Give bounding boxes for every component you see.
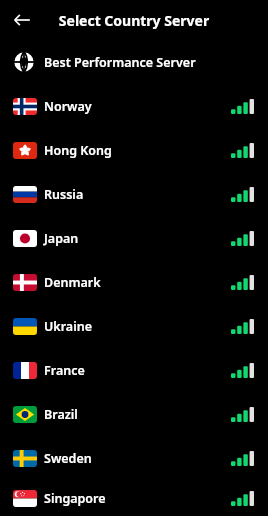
button[interactable]: Brazil <box>0 392 268 436</box>
button[interactable]: Sweden <box>0 436 268 480</box>
button[interactable]: Russia <box>0 172 268 216</box>
staticText: Hong Kong <box>44 142 112 159</box>
staticText: Select Country Server <box>0 11 268 30</box>
staticText: France <box>44 362 85 379</box>
staticText: Denmark <box>44 274 101 291</box>
staticText: Russia <box>44 186 84 203</box>
staticText: Japan <box>44 230 79 247</box>
button[interactable]: Denmark <box>0 260 268 304</box>
button[interactable]: Ukraine <box>0 304 268 348</box>
button[interactable]: Best Performance Server <box>0 40 268 84</box>
staticText: Sweden <box>44 450 92 467</box>
staticText: Ukraine <box>44 318 93 335</box>
button[interactable]: Singapore <box>0 480 268 516</box>
staticText: Brazil <box>44 406 78 423</box>
staticText: Norway <box>44 98 92 115</box>
staticText: Singapore <box>44 490 106 507</box>
staticText: Best Performance Server <box>44 54 196 71</box>
button[interactable]: Norway <box>0 84 268 128</box>
button[interactable]: Japan <box>0 216 268 260</box>
button[interactable]: France <box>0 348 268 392</box>
button[interactable]: Hong Kong <box>0 128 268 172</box>
button[interactable]: Back <box>8 6 36 34</box>
